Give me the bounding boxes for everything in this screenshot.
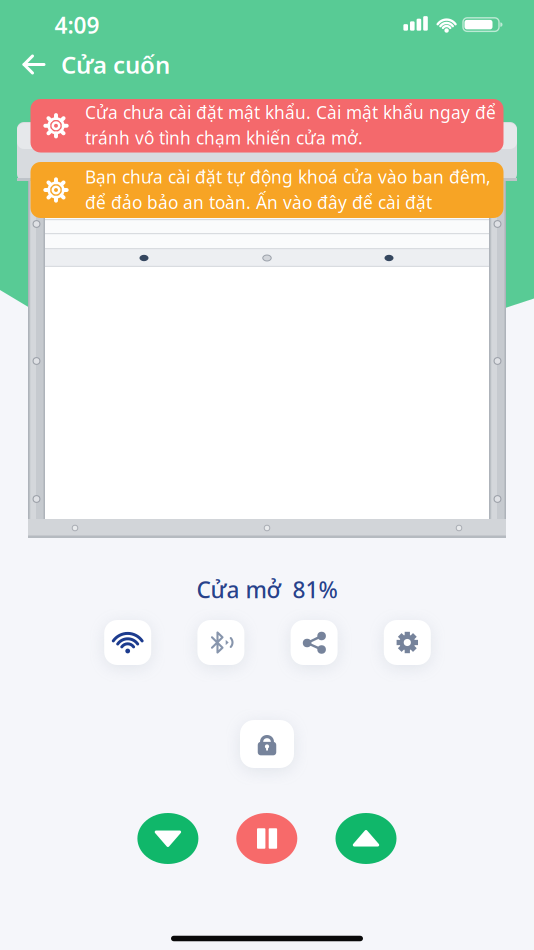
button[interactable]: Lock — [240, 720, 294, 768]
staticText: Bạn chưa cài đặt tự động khoá cửa vào ba… — [85, 165, 491, 188]
staticText: Cửa mở 81% — [196, 574, 337, 604]
button[interactable]: Bluetooth — [197, 620, 244, 665]
staticText: tránh vô tình chạm khiến cửa mở. — [85, 126, 363, 149]
button[interactable]: Share — [291, 620, 338, 665]
button[interactable]: Cửa chưa cài đặt mật khẩu. Cài mật khẩu … — [30, 99, 503, 152]
button[interactable]: Close door — [137, 813, 198, 864]
staticText: Cửa chưa cài đặt mật khẩu. Cài mật khẩu … — [85, 101, 496, 124]
button[interactable]: Settings — [384, 620, 431, 665]
button[interactable]: WiFi — [104, 620, 151, 665]
button[interactable]: Stop — [236, 813, 297, 864]
button[interactable]: Back — [22, 56, 45, 73]
staticText: để đảo bảo an toàn. Ấn vào đây để cài đặ… — [85, 191, 432, 214]
button[interactable]: Bạn chưa cài đặt tự động khoá cửa vào ba… — [30, 162, 503, 218]
button[interactable]: Open door — [335, 813, 396, 864]
staticText: 4:09 — [54, 10, 99, 40]
staticText: Cửa cuốn — [61, 49, 170, 80]
